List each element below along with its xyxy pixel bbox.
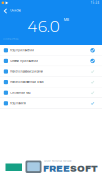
staticText: Кэш приложений <box>10 48 34 52</box>
button[interactable]: Остатки приложений <box>0 56 102 66</box>
staticText: Каталог бесплатных программ <box>44 159 71 162</box>
staticText: Кэш памяти <box>10 101 26 105</box>
button[interactable]: Кэш памяти <box>0 98 102 109</box>
staticText: MB <box>64 17 69 22</box>
staticText: FREE <box>43 163 70 174</box>
staticText: Очистка <box>10 8 21 12</box>
staticText: 15:24 <box>90 1 99 4</box>
button[interactable]: Неиспользованный язык <box>0 77 102 87</box>
staticText: Неиспользуемые рисунки <box>10 70 43 73</box>
staticText: Системный кэш <box>10 91 30 94</box>
staticText: SOFT <box>70 163 98 174</box>
staticText: Неиспользованный язык <box>10 80 43 84</box>
button[interactable]: Системный кэш <box>0 87 102 98</box>
staticText: МУСОРНЫЕ ФАЙЛЫ <box>3 38 19 40</box>
staticText: 46.0 <box>27 16 59 35</box>
button[interactable]: Кэш приложений <box>0 45 102 56</box>
button[interactable]: Неиспользуемые рисунки <box>0 66 102 77</box>
button[interactable]: Очистка <box>0 6 30 15</box>
staticText: Остатки приложений <box>10 59 38 63</box>
